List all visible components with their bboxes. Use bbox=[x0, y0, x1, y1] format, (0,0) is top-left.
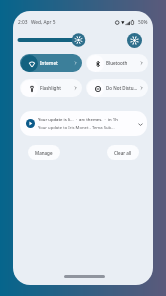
staticText: Do Not Distu... bbox=[106, 85, 139, 91]
button[interactable]: Do Not Distu... bbox=[86, 79, 148, 97]
button[interactable]: Clear all bbox=[107, 145, 139, 160]
staticText: Wed, Apr 5 bbox=[31, 19, 56, 26]
staticText: Internet bbox=[40, 60, 73, 66]
button[interactable]: Internet bbox=[20, 54, 82, 72]
staticText: Manage bbox=[35, 150, 53, 156]
button[interactable]: Bluetooth bbox=[86, 54, 148, 72]
staticText: Bluetooth bbox=[106, 60, 139, 66]
staticText: Your update to Iris Monet - Tema Sub... bbox=[38, 125, 115, 131]
staticText: Flashlight bbox=[40, 85, 73, 91]
button[interactable]: Manage bbox=[28, 145, 60, 160]
staticText: Clear all bbox=[114, 150, 132, 156]
staticText: 2:03 bbox=[18, 19, 28, 26]
staticText: Your update is li... · arc themes. · in … bbox=[38, 117, 118, 123]
button[interactable]: Your update is li... · arc themes. · in … bbox=[20, 111, 147, 136]
button[interactable]: Brightness bbox=[17, 32, 122, 48]
button[interactable]: Flashlight bbox=[20, 79, 82, 97]
staticText: 50% bbox=[138, 19, 148, 26]
button[interactable]: Auto brightness bbox=[127, 33, 142, 48]
